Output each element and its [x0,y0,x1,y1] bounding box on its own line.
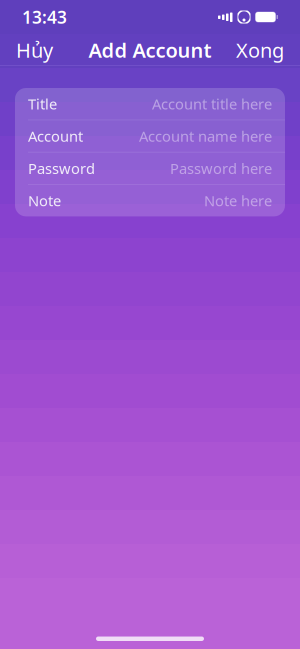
staticText: Title [28,94,57,113]
staticText: Password [28,159,95,178]
staticText: Account title here [152,94,272,113]
button[interactable]: Note [15,185,285,216]
staticText: Account [28,126,83,146]
button[interactable]: Account [15,120,285,152]
staticText: Note [28,191,61,210]
staticText: Password here [170,159,272,178]
staticText: Note here [204,191,272,210]
button[interactable]: Title [15,88,285,119]
staticText: Hủy [16,37,53,63]
button[interactable]: Xong [224,29,296,71]
staticText: 13:43 [22,5,67,28]
staticText: Xong [236,37,284,63]
button[interactable]: Password [15,153,285,184]
staticText: Account name here [139,126,272,146]
staticText: Add Account [88,37,211,63]
button[interactable]: Hủy [4,29,65,71]
